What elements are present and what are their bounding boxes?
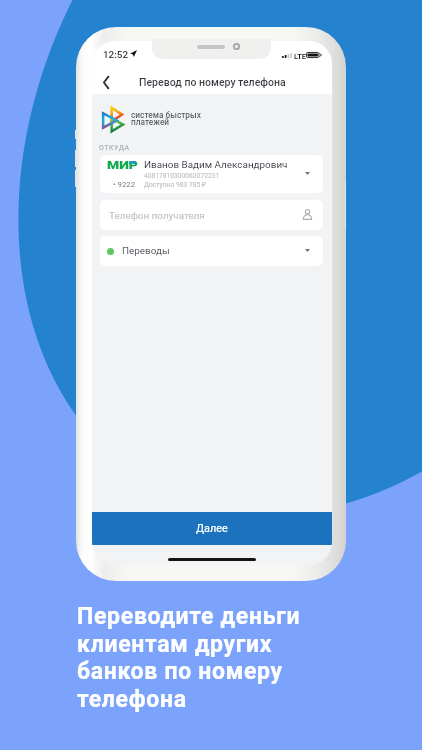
staticText: платежей	[131, 117, 170, 127]
staticText: • 9222	[113, 180, 136, 189]
staticText: Переводы	[122, 245, 170, 257]
staticText: Доступно 983 785 ₽	[144, 181, 207, 189]
staticText: 40817810300062072231	[144, 172, 220, 180]
button[interactable]: Назад	[94, 70, 118, 94]
staticText: Перевод по номеру телефона	[139, 76, 286, 88]
staticText: клиентам других	[77, 631, 273, 658]
staticText: Далее	[196, 522, 228, 535]
staticText: телефона	[77, 686, 187, 713]
button[interactable]: Далее	[92, 512, 332, 545]
button[interactable]: Переводы	[100, 236, 323, 266]
button[interactable]: МИР	[100, 155, 323, 193]
staticText: Телефон получателя	[109, 210, 205, 222]
staticText: Переводите деньги	[77, 603, 301, 630]
staticText: 12:52	[103, 49, 129, 61]
staticText: ОТКУДА	[99, 144, 130, 152]
staticText: МИР	[107, 158, 138, 171]
staticText: банков по номеру	[77, 658, 283, 685]
button[interactable]: Телефон получателя	[100, 200, 323, 230]
staticText: LTE	[294, 52, 306, 61]
staticText: Иванов Вадим Александрович	[144, 159, 288, 171]
staticText: система быстрых	[131, 110, 201, 120]
